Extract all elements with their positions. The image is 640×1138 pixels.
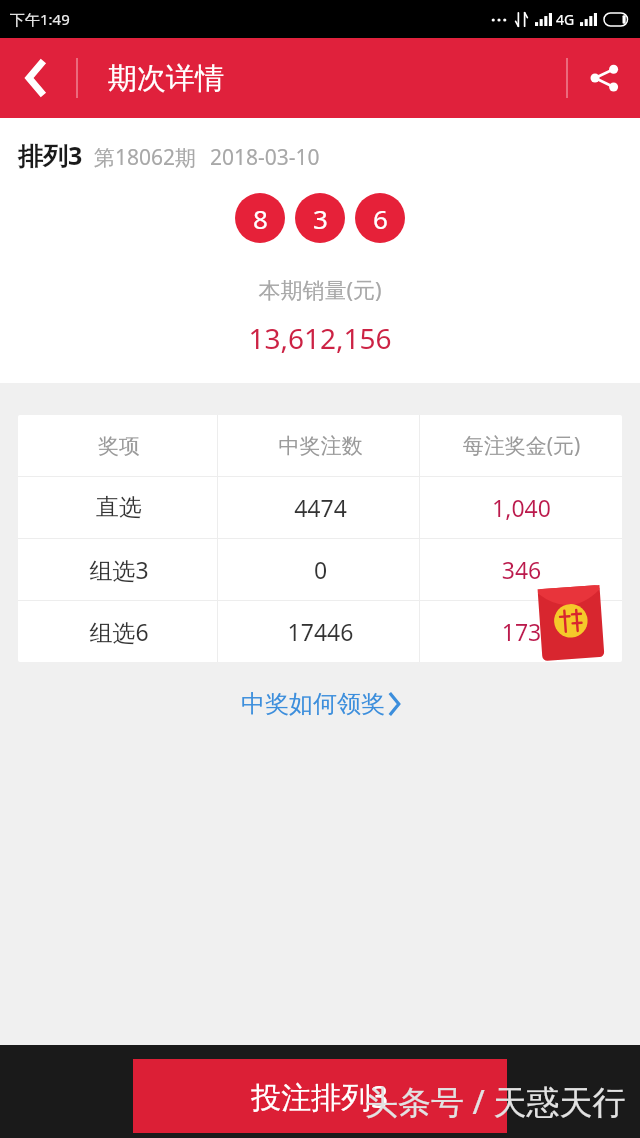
button[interactable]: 投注排列3	[133, 1059, 507, 1133]
staticText: 中奖如何领奖	[241, 689, 385, 719]
staticText: 直选	[18, 493, 220, 522]
staticText: 1,040	[421, 492, 622, 523]
button[interactable]: 中奖如何领奖	[227, 683, 414, 725]
staticText: 组选6	[18, 616, 220, 647]
staticText: 2018-03-10	[210, 143, 320, 172]
button[interactable]: Back	[0, 38, 74, 118]
staticText: 4474	[220, 492, 421, 523]
staticText: 每注奖金(元)	[421, 431, 622, 460]
staticText: 3	[313, 201, 328, 236]
button[interactable]: Open red packet	[538, 585, 604, 661]
staticText: 本期销量(元)	[0, 274, 640, 304]
staticText: 下午1:49	[10, 9, 70, 29]
staticText: 第18062期	[94, 143, 197, 172]
staticText: 排列3	[18, 138, 83, 172]
button[interactable]: Share	[568, 38, 640, 118]
staticText: 4G	[556, 10, 575, 29]
staticText: 投注排列3	[251, 1076, 389, 1117]
staticText: 头条号 / 天惑天行	[365, 1079, 626, 1124]
staticText: 173	[421, 616, 622, 647]
staticText: 0	[220, 554, 421, 585]
staticText: 期次详情	[108, 60, 224, 97]
staticText: 346	[421, 554, 622, 585]
staticText: 17446	[220, 616, 421, 647]
staticText: 6	[373, 201, 388, 236]
staticText: 中奖注数	[220, 433, 421, 459]
staticText: 组选3	[18, 554, 220, 585]
staticText: 奖项	[18, 433, 220, 459]
staticText: 13,612,156	[0, 319, 640, 357]
staticText: 8	[253, 201, 268, 236]
